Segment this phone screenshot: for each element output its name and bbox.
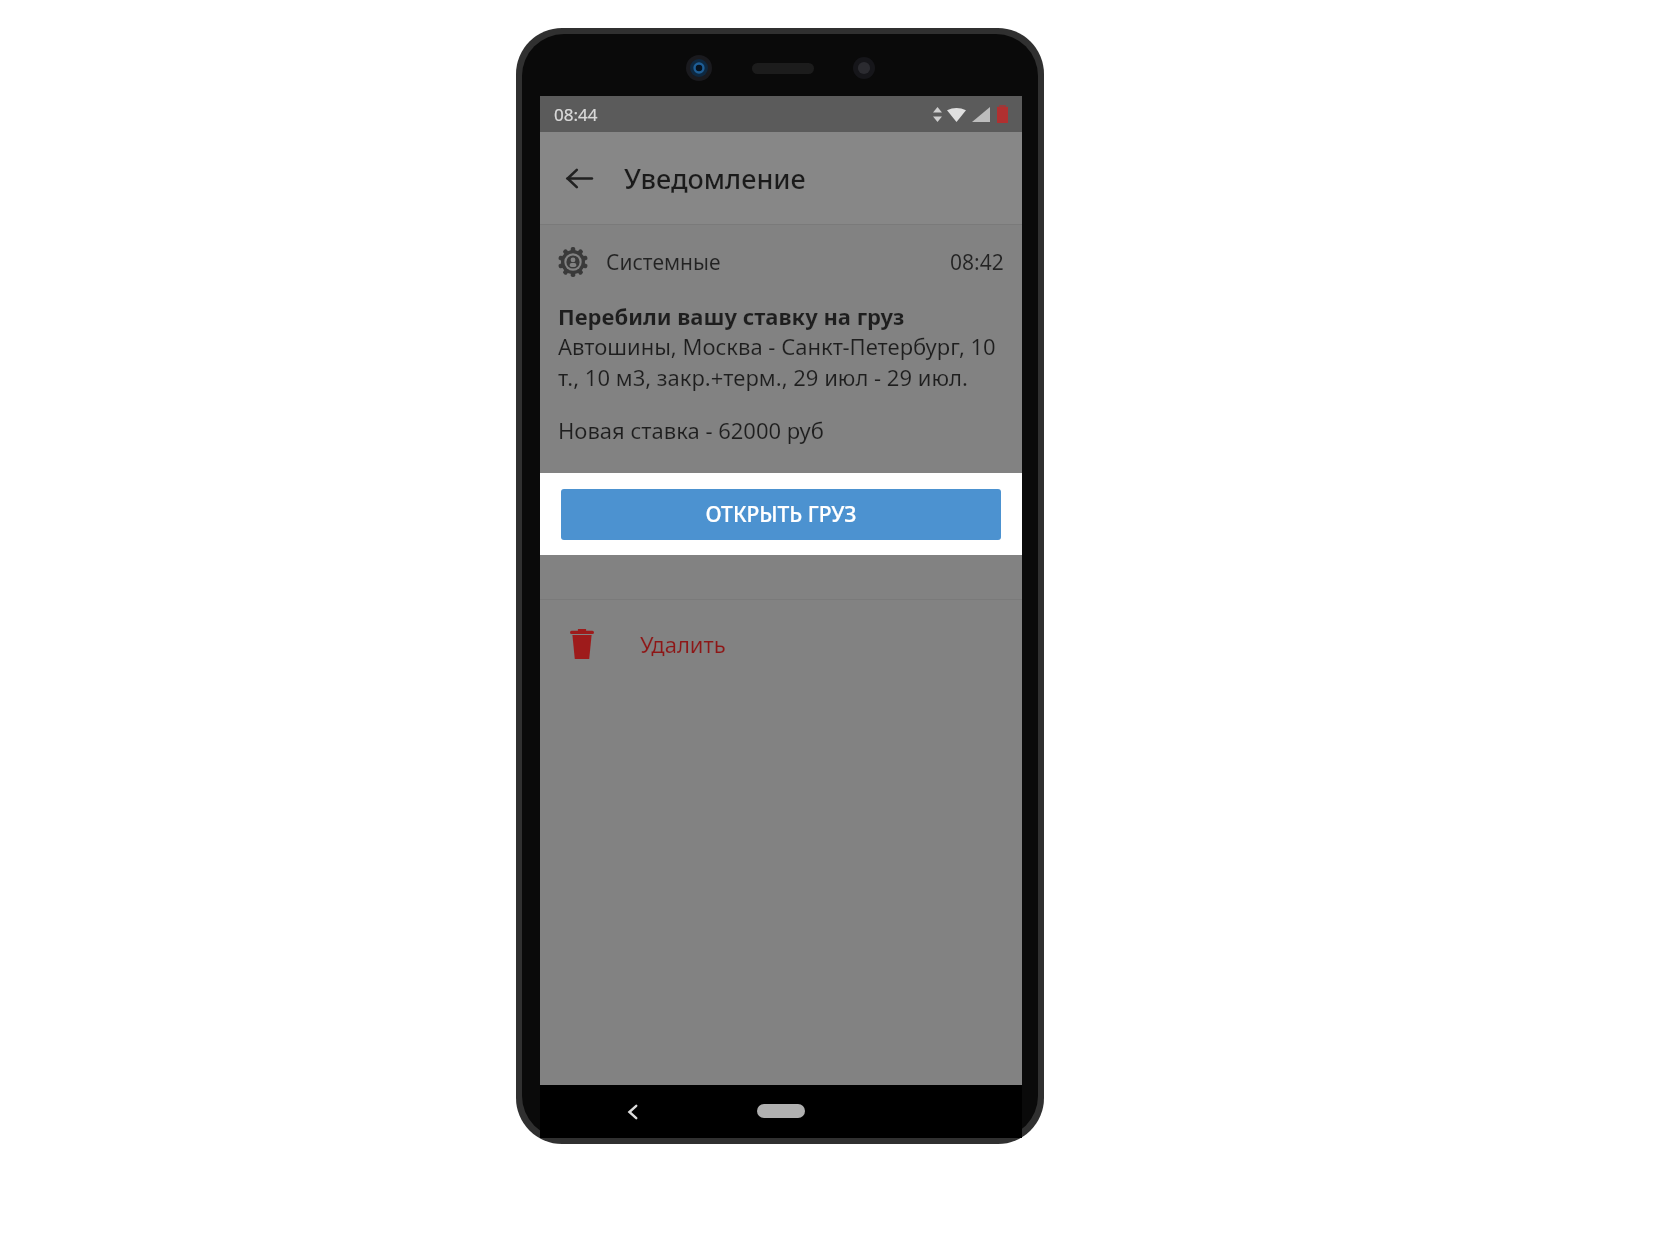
staticText: ОТКРЫТЬ ГРУЗ [705,500,857,529]
button[interactable]: ОТКРЫТЬ ГРУЗ [561,489,1001,540]
staticText: Уведомление [624,160,806,197]
staticText: 08:42 [950,248,1004,277]
staticText: Новая ставка - 62000 руб [558,415,824,445]
button[interactable]: Back [618,1097,648,1127]
staticText: 08:44 [554,103,598,126]
staticText: Системные [606,248,721,277]
staticText: Перебили вашу ставку на груз Автошины, М… [558,301,1004,393]
button[interactable]: Back [554,153,604,203]
staticText: Удалить [640,629,726,659]
button[interactable]: Home [757,1104,805,1118]
button[interactable]: Удалить [540,600,1022,687]
